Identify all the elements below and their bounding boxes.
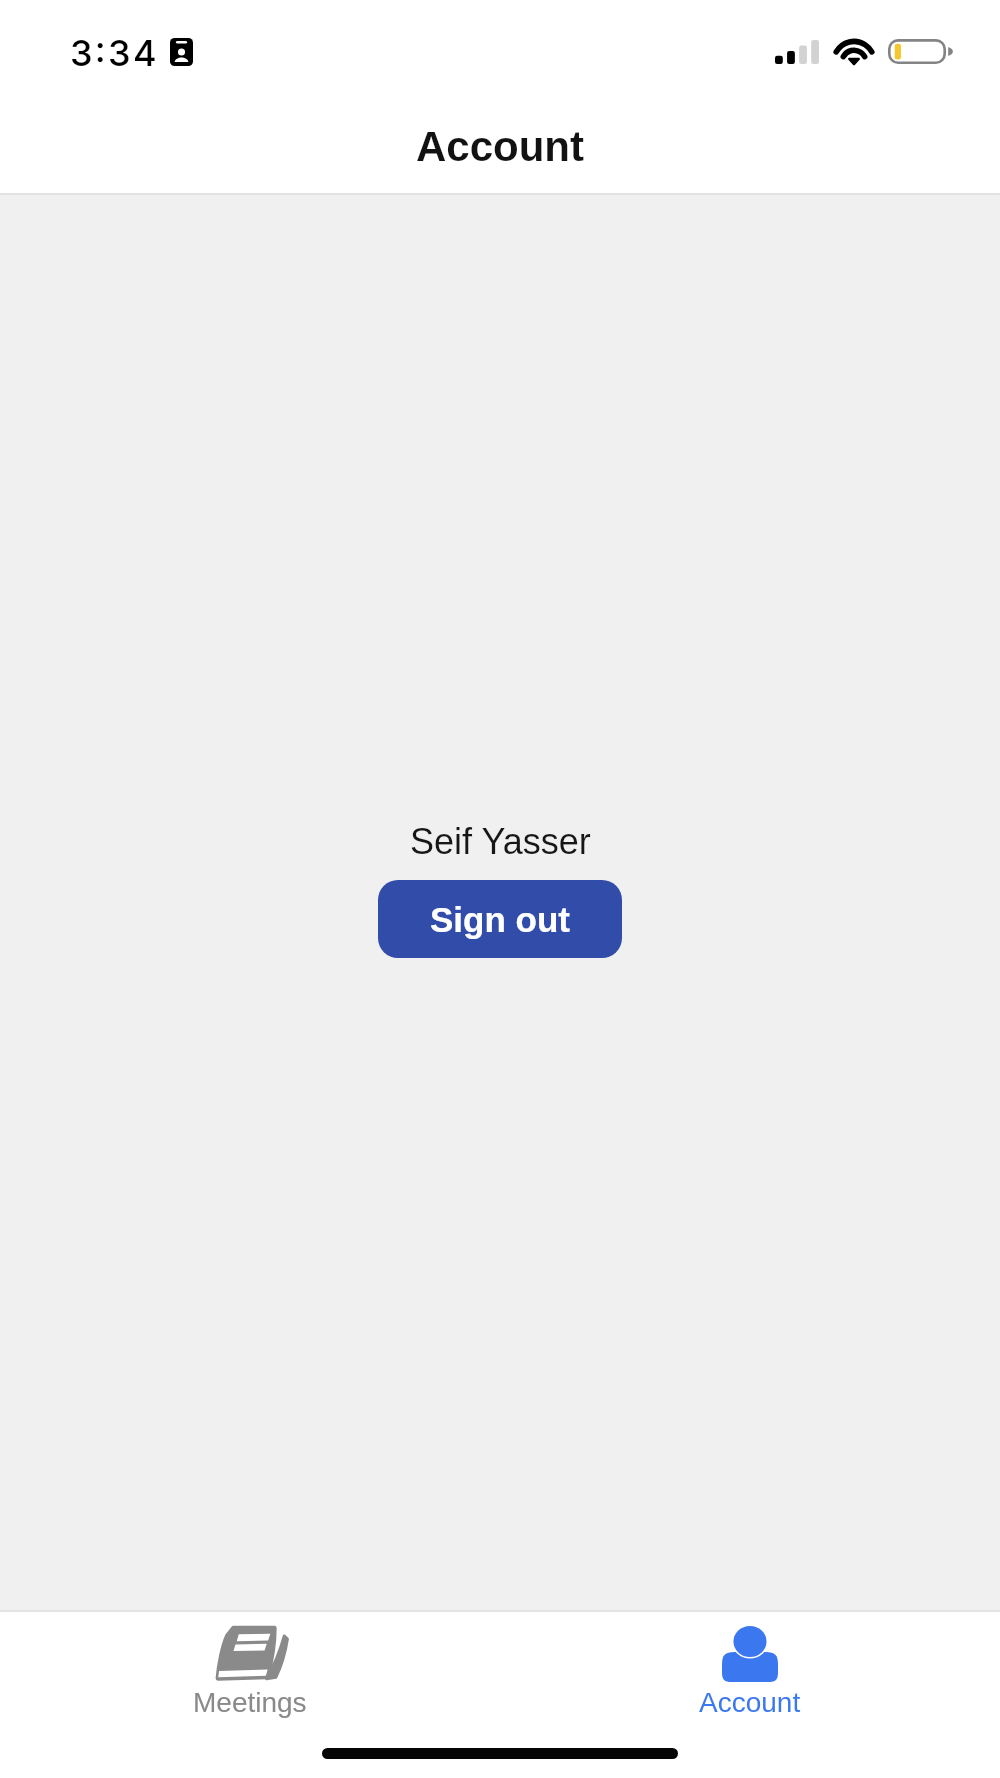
- other: Battery: [888, 39, 954, 64]
- staticText: Account: [699, 1687, 801, 1718]
- staticText: 3:34: [70, 31, 159, 75]
- staticText: Account: [416, 123, 584, 170]
- other: Cellular signal: [775, 40, 819, 64]
- button[interactable]: Sign out: [378, 880, 622, 958]
- button[interactable]: Meetings: [0, 1612, 500, 1724]
- staticText: Meetings: [193, 1687, 307, 1718]
- other: Wi-Fi: [833, 38, 875, 64]
- button[interactable]: Account: [500, 1612, 1000, 1724]
- other: Screen recording: [170, 38, 193, 66]
- staticText: Sign out: [430, 900, 570, 939]
- staticText: Seif Yasser: [410, 821, 591, 861]
